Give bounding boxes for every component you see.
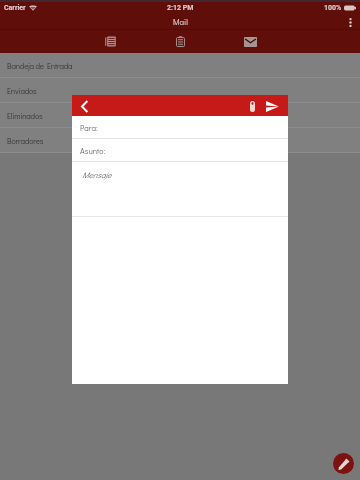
staticText: Para:	[80, 123, 98, 133]
staticText: Borradores	[7, 136, 44, 146]
button[interactable]: Eliminados	[0, 103, 360, 128]
button[interactable]: Asunto:	[72, 139, 288, 162]
staticText: Bandeja de Entrada	[7, 61, 73, 71]
staticText: 100%	[324, 4, 342, 12]
button[interactable]: Para:	[72, 116, 288, 139]
button[interactable]: Articles	[75, 30, 145, 53]
button[interactable]: Mensaje	[72, 162, 288, 217]
staticText: Carrier	[4, 4, 26, 12]
button[interactable]: Compose	[333, 453, 354, 474]
button[interactable]: Send	[263, 97, 281, 115]
button[interactable]: More options	[340, 15, 360, 29]
staticText: Enviados	[7, 86, 37, 96]
button[interactable]: Borradores	[0, 128, 360, 153]
staticText: Mail	[173, 17, 188, 27]
button[interactable]: Attach file	[244, 97, 260, 115]
button[interactable]: Mail	[215, 30, 285, 53]
button[interactable]: Enviados	[0, 78, 360, 103]
button[interactable]: Notes	[145, 30, 215, 53]
staticText: Asunto:	[80, 146, 106, 156]
button[interactable]: Bandeja de Entrada	[0, 53, 360, 78]
staticText: 2:12 PM	[167, 4, 194, 12]
button[interactable]: Back	[76, 98, 92, 114]
staticText: Eliminados	[7, 111, 43, 121]
staticText: Mensaje	[82, 170, 112, 180]
